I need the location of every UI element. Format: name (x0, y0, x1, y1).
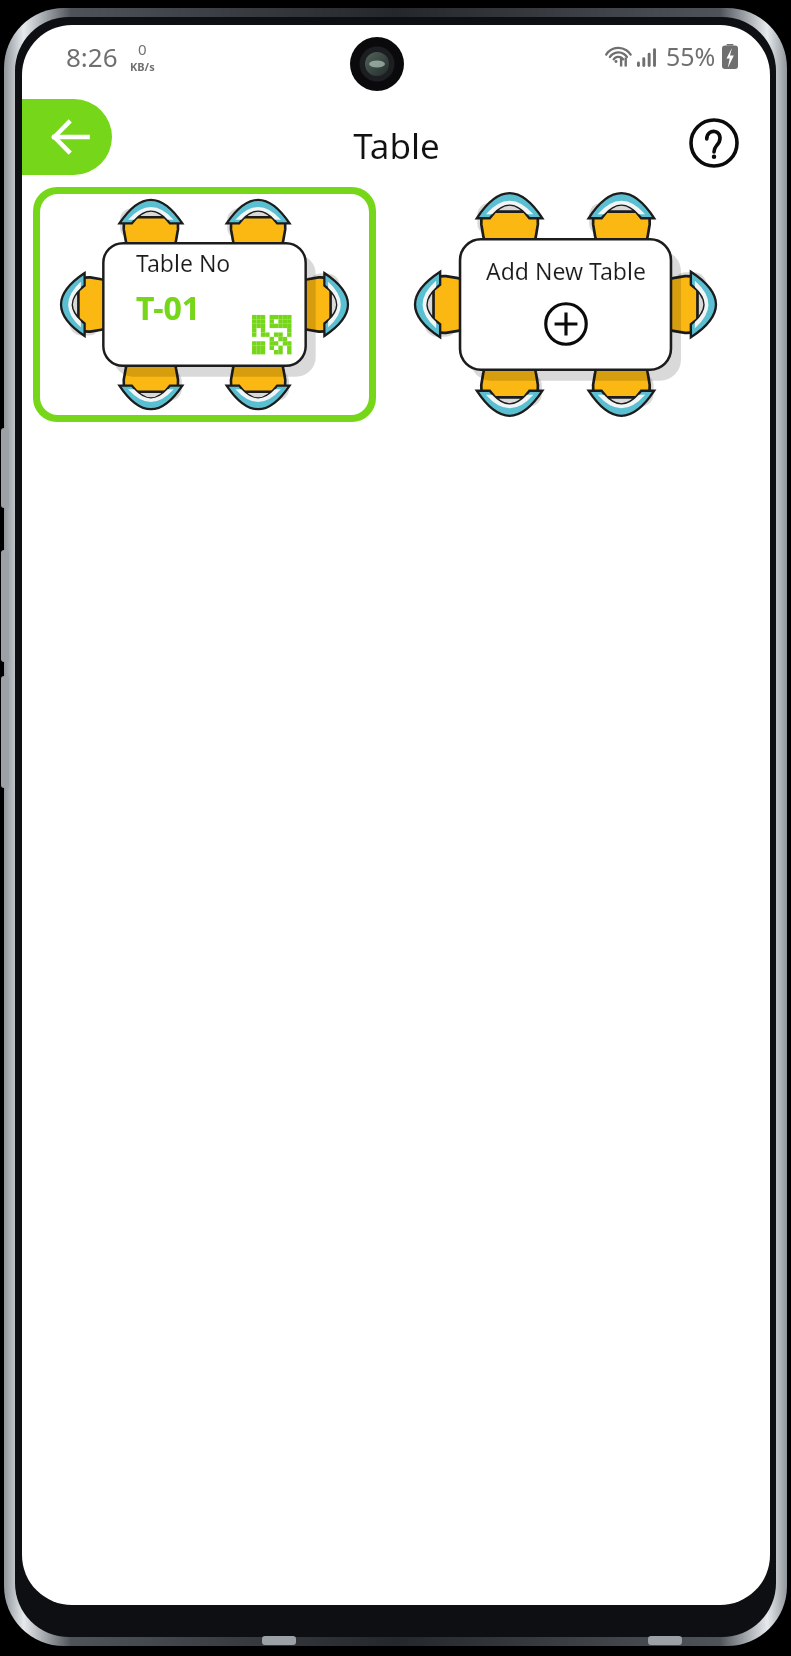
button[interactable]: Add New Table (394, 187, 737, 422)
button[interactable]: Help (684, 113, 744, 173)
staticText: Table (353, 122, 440, 170)
staticText: Table No (136, 247, 231, 278)
staticText: T-01 (136, 286, 201, 330)
staticText: 8:26 (66, 39, 118, 74)
staticText: Add New Table (486, 255, 646, 286)
staticText: KB/s (130, 59, 155, 74)
button[interactable]: Back (22, 99, 112, 175)
button[interactable]: Table No (33, 187, 376, 422)
staticText: 0 (138, 39, 147, 59)
staticText: 55% (666, 39, 716, 73)
